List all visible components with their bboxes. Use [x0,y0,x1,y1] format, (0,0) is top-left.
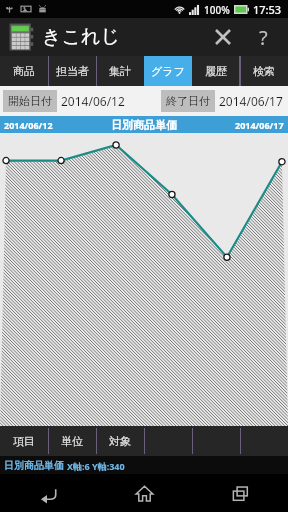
button[interactable]: 検索 [240,56,288,86]
staticText: 17:53 [253,2,282,17]
staticText: 履歴 [205,64,227,78]
staticText: 2014/06/12 [61,93,125,109]
button[interactable] [240,426,288,456]
button[interactable] [192,426,240,456]
staticText: 開始日付 [8,94,52,108]
button[interactable]: 単位 [48,426,96,456]
staticText: グラフ [151,64,185,78]
staticText: 検索 [253,64,275,78]
staticText: 日別商品単価 [111,118,177,132]
button[interactable]: 担当者 [48,56,96,86]
button[interactable]: Back [0,474,96,512]
staticText: 日別商品単価 [4,459,64,472]
button[interactable]: Home [96,474,192,512]
button[interactable]: Help [246,20,280,54]
button[interactable] [0,133,288,426]
staticText: 対象 [109,434,131,448]
staticText: ? [259,24,268,51]
staticText: 項目 [13,434,35,448]
button[interactable]: 項目 [0,426,48,456]
staticText: 2014/06/12 [4,119,53,131]
staticText: 100% [204,3,230,17]
button[interactable] [144,426,192,456]
button[interactable]: 商品 [0,56,48,86]
button[interactable]: 終了日付 [161,90,215,112]
staticText: 集計 [109,64,131,78]
button[interactable]: グラフ [144,56,192,86]
staticText: 終了日付 [166,94,210,108]
button[interactable]: 集計 [96,56,144,86]
staticText: きこれじ [42,25,120,49]
button[interactable]: Close [206,20,240,54]
staticText: 担当者 [56,64,89,78]
staticText: 2014/06/17 [235,119,284,131]
button[interactable]: 履歴 [192,56,240,86]
button[interactable]: 対象 [96,426,144,456]
staticText: 2014/06/17 [219,93,283,109]
staticText: X軸:6 Y軸:340 [67,460,125,472]
button[interactable]: 開始日付 [3,90,57,112]
staticText: 商品 [13,64,35,78]
staticText: 単位 [61,434,83,448]
button[interactable]: Recent apps [192,474,288,512]
